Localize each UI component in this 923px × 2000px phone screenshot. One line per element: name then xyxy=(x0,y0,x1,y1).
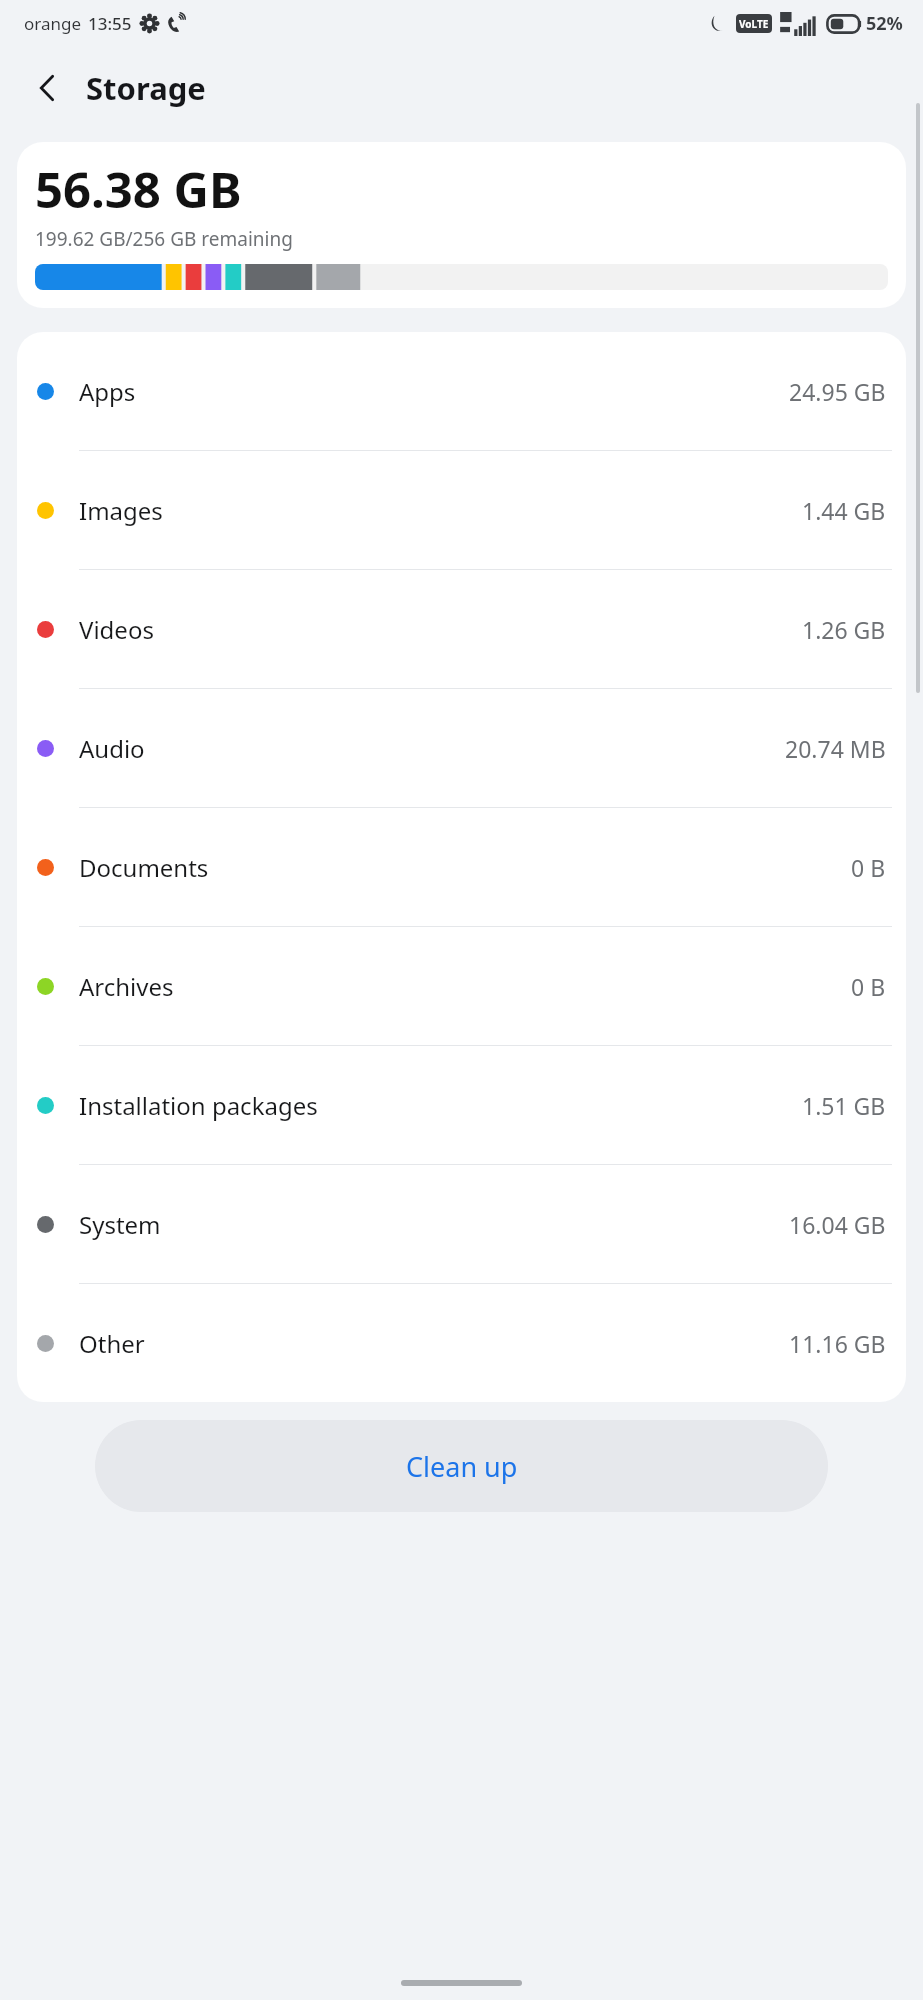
staticText: 52% xyxy=(866,11,903,36)
button[interactable]: Archives xyxy=(17,927,906,1045)
button[interactable]: Other xyxy=(17,1284,906,1402)
staticText: Archives xyxy=(79,970,174,1003)
staticText: Apps xyxy=(79,375,136,408)
staticText: Documents xyxy=(79,851,209,884)
staticText: 199.62 GB/256 GB remaining xyxy=(35,226,293,252)
staticText: 0 B xyxy=(851,971,886,1002)
staticText: VoLTE xyxy=(739,17,769,31)
staticText: 1.26 GB xyxy=(802,614,886,645)
button[interactable]: Documents xyxy=(17,808,906,926)
staticText: 0 B xyxy=(851,852,886,883)
staticText: 20.74 MB xyxy=(785,733,886,764)
staticText: Other xyxy=(79,1327,145,1360)
staticText: 13:55 xyxy=(88,12,132,35)
staticText: Installation packages xyxy=(79,1089,318,1122)
staticText: Videos xyxy=(79,613,154,646)
staticText: Images xyxy=(79,494,163,527)
staticText: 56.38 GB xyxy=(35,156,242,223)
staticText: 11.16 GB xyxy=(789,1328,886,1359)
staticText: orange xyxy=(24,12,82,35)
button[interactable]: Back xyxy=(20,60,76,116)
button[interactable]: Installation packages xyxy=(17,1046,906,1164)
button[interactable]: Images xyxy=(17,451,906,569)
staticText: 1.44 GB xyxy=(802,495,886,526)
staticText: 16.04 GB xyxy=(789,1209,886,1240)
staticText: Storage xyxy=(86,67,206,109)
button[interactable]: Audio xyxy=(17,689,906,807)
staticText: 24.95 GB xyxy=(789,376,886,407)
staticText: Clean up xyxy=(406,1448,518,1485)
button[interactable]: Apps xyxy=(17,332,906,450)
button[interactable]: Videos xyxy=(17,570,906,688)
button[interactable]: Clean up xyxy=(95,1420,828,1512)
staticText: Audio xyxy=(79,732,145,765)
button[interactable]: System xyxy=(17,1165,906,1283)
button[interactable]: 56.38 GB xyxy=(17,142,906,308)
staticText: System xyxy=(79,1208,161,1241)
staticText: 1.51 GB xyxy=(802,1090,886,1121)
